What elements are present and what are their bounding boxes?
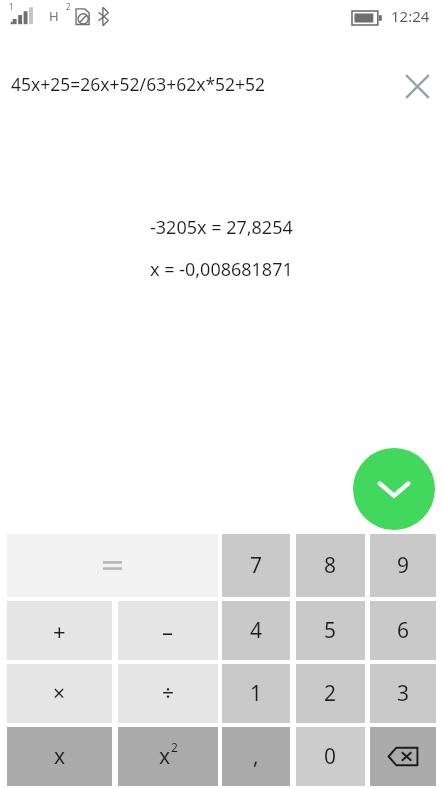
staticText: 8 xyxy=(324,551,337,580)
staticText: 12:24 xyxy=(391,6,430,26)
staticText: 2 xyxy=(171,739,178,755)
button[interactable]: Hide keypad xyxy=(353,448,435,530)
staticText: H xyxy=(49,7,59,25)
staticText: 9 xyxy=(397,551,410,580)
staticText: 5 xyxy=(324,616,337,645)
button[interactable]: 3 xyxy=(370,664,436,723)
staticText: 1 xyxy=(250,679,263,708)
button[interactable]: 4 xyxy=(222,601,290,660)
button[interactable]: 9 xyxy=(370,534,436,597)
button[interactable]: 1 xyxy=(222,664,290,723)
staticText: 2 xyxy=(66,1,71,12)
button[interactable]: 0 xyxy=(296,727,365,786)
button[interactable]: 6 xyxy=(370,601,436,660)
staticText: x xyxy=(54,742,66,771)
staticText: + xyxy=(53,616,66,646)
staticText: 1 xyxy=(9,1,14,12)
button[interactable]: × xyxy=(7,664,112,723)
staticText: × xyxy=(53,679,66,708)
staticText: 7 xyxy=(250,551,263,580)
button[interactable]: x xyxy=(7,727,112,786)
button[interactable]: + xyxy=(7,601,112,660)
staticText: 0 xyxy=(324,742,337,771)
button[interactable]: x xyxy=(118,727,218,786)
staticText: 45x+25=26x+52/63+62x*52+52 xyxy=(11,72,266,96)
button[interactable]: 7 xyxy=(222,534,290,597)
staticText: 6 xyxy=(397,616,410,645)
button[interactable]: Equals xyxy=(7,534,218,597)
button[interactable]: – xyxy=(118,601,218,660)
button[interactable]: ÷ xyxy=(118,664,218,723)
button[interactable]: 5 xyxy=(296,601,365,660)
button[interactable]: Backspace xyxy=(370,727,436,786)
staticText: x = -0,008681871 xyxy=(150,257,293,282)
staticText: x xyxy=(159,742,171,771)
button[interactable]: 8 xyxy=(296,534,365,597)
staticText: -3205x = 27,8254 xyxy=(150,215,293,240)
button[interactable]: 2 xyxy=(296,664,365,723)
staticText: ÷ xyxy=(162,679,175,708)
staticText: – xyxy=(162,616,174,646)
button[interactable]: Clear expression xyxy=(395,64,439,108)
staticText: 2 xyxy=(324,679,337,708)
staticText: , xyxy=(253,742,259,771)
staticText: 3 xyxy=(397,679,410,708)
staticText: 4 xyxy=(250,616,263,645)
button[interactable]: , xyxy=(222,727,290,786)
